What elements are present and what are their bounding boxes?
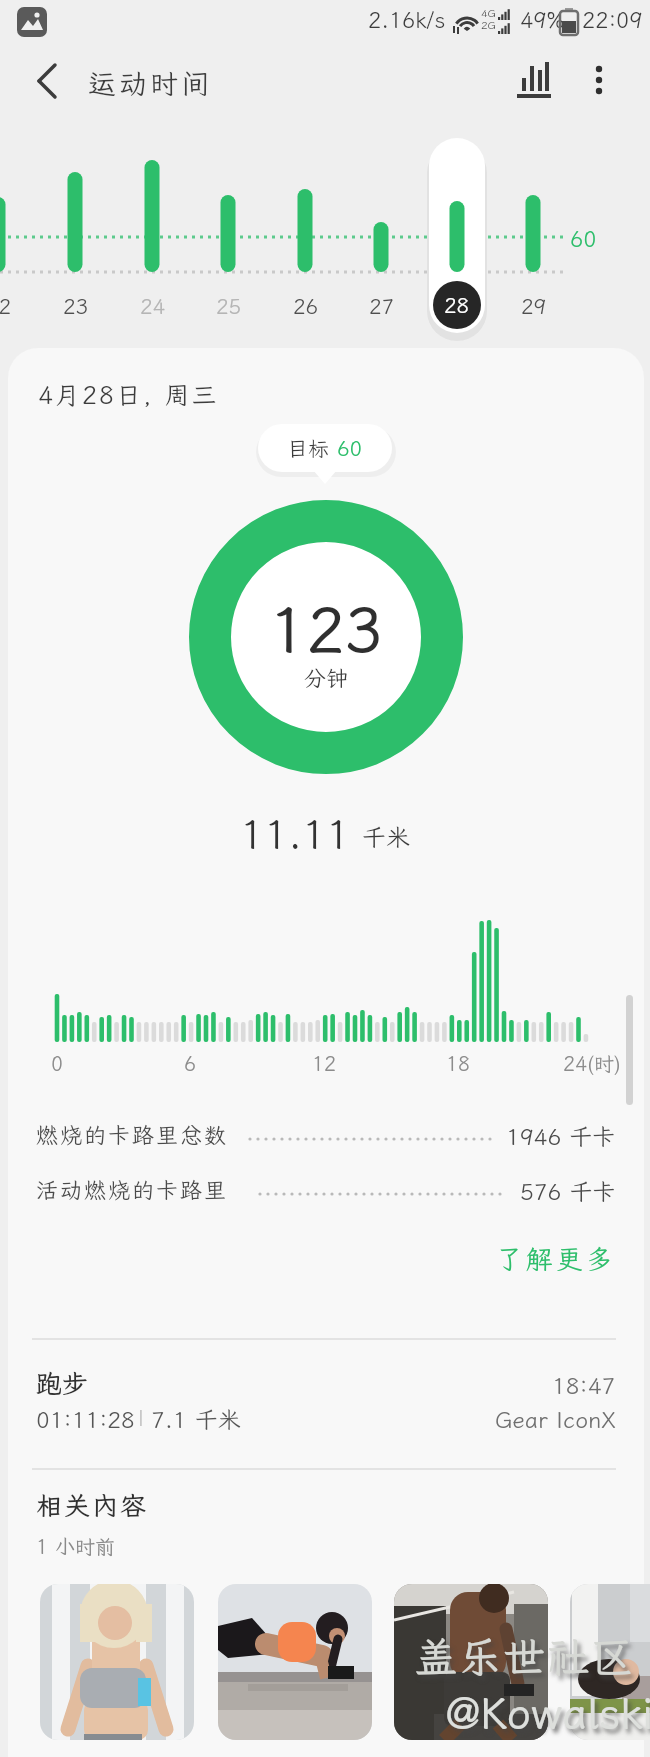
staticText: 29 — [521, 292, 547, 320]
staticText: 22 — [0, 292, 12, 320]
button[interactable]: 了解更多 — [420, 1238, 616, 1280]
staticText: 27 — [369, 292, 395, 320]
staticText: 1946 千卡 — [506, 1121, 616, 1151]
staticText: 跑步 — [36, 1366, 89, 1400]
staticText: 25 — [216, 292, 242, 320]
button[interactable] — [28, 58, 74, 104]
staticText: 12 — [312, 1050, 336, 1076]
staticText: 01:11:28 — [36, 1404, 135, 1434]
staticText: 0 — [51, 1050, 63, 1076]
staticText: 运动时间 — [88, 65, 213, 102]
staticText: 4G — [481, 6, 496, 20]
button[interactable]: 28 — [433, 281, 481, 329]
staticText: 18 — [446, 1050, 470, 1076]
staticText: 2G — [481, 18, 496, 32]
staticText: 活动燃烧的卡路里 — [36, 1175, 229, 1204]
button[interactable] — [218, 1584, 372, 1740]
staticText: 6 — [184, 1050, 196, 1076]
staticText: 60 — [570, 224, 597, 253]
staticText: 18:47 — [552, 1370, 616, 1400]
staticText: | — [137, 1403, 145, 1432]
button[interactable] — [570, 1584, 650, 1740]
button[interactable] — [40, 1584, 194, 1740]
button[interactable] — [580, 58, 618, 104]
staticText: 分钟 — [304, 663, 349, 691]
staticText: @Kowalski — [446, 1684, 650, 1741]
staticText: 4月28日, 周三 — [38, 378, 219, 411]
staticText: 目标 — [287, 434, 337, 462]
button[interactable] — [20, 1360, 630, 1450]
staticText: 123 — [269, 587, 383, 670]
staticText: 7.1 千米 — [151, 1404, 241, 1434]
button[interactable] — [512, 58, 558, 104]
staticText: Gear IconX — [495, 1404, 616, 1434]
staticText: 49% — [520, 5, 565, 34]
staticText: 11.11 — [240, 808, 350, 858]
staticText: 相关内容 — [36, 1488, 149, 1522]
staticText: 60 — [337, 434, 363, 462]
staticText: 千米 — [362, 821, 410, 853]
button[interactable] — [394, 1584, 548, 1740]
staticText: 22:09 — [582, 5, 643, 34]
staticText: 26 — [293, 292, 319, 320]
staticText: 了解更多 — [496, 1241, 616, 1277]
staticText: 576 千卡 — [520, 1176, 616, 1206]
staticText: 2.16k/s — [368, 5, 446, 34]
staticText: 24 — [140, 292, 166, 320]
staticText: 24(时) — [563, 1050, 621, 1076]
staticText: 盖乐世社区 — [415, 1629, 636, 1684]
staticText: 1 小时前 — [36, 1533, 115, 1559]
staticText: 23 — [63, 292, 89, 320]
staticText: 燃烧的卡路里总数 — [36, 1120, 229, 1149]
staticText: 28 — [444, 291, 470, 319]
